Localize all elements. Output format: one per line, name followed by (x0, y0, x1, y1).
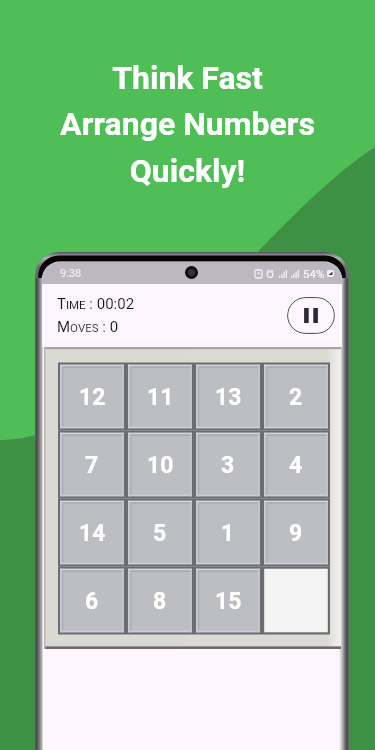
staticText: 12 (79, 384, 106, 411)
staticText: 7 (85, 452, 99, 479)
button[interactable]: 13 (194, 363, 262, 431)
staticText: 13 (215, 384, 242, 411)
staticText: 9 (289, 520, 303, 547)
staticText: 8 (153, 588, 167, 615)
staticText: 6 (85, 588, 99, 615)
staticText: Think Fast Arrange Numbers Quickly! (0, 59, 375, 190)
staticText: 11 (147, 384, 174, 411)
staticText: 54% (303, 267, 325, 280)
staticText: 3 (221, 452, 235, 479)
staticText: MOVES : 0 (57, 318, 119, 336)
button[interactable]: 12 (58, 363, 126, 431)
button[interactable]: 9 (262, 499, 330, 567)
button[interactable]: 10 (126, 431, 194, 499)
staticText: 14 (79, 520, 106, 547)
button[interactable]: 3 (194, 431, 262, 499)
staticText: 10 (147, 452, 174, 479)
button[interactable] (262, 567, 330, 635)
button[interactable]: 7 (58, 431, 126, 499)
staticText: 1 (221, 520, 235, 547)
button[interactable]: 11 (126, 363, 194, 431)
staticText: 9:38 (60, 267, 82, 280)
staticText: 5 (153, 520, 167, 547)
staticText: 2 (289, 384, 303, 411)
staticText: TIME : 00:02 (57, 295, 135, 313)
button[interactable]: 4 (262, 431, 330, 499)
staticText: 4 (289, 452, 303, 479)
button[interactable]: Pause (287, 297, 335, 334)
button[interactable]: 5 (126, 499, 194, 567)
button[interactable]: 6 (58, 567, 126, 635)
button[interactable]: 15 (194, 567, 262, 635)
button[interactable]: 8 (126, 567, 194, 635)
button[interactable]: 1 (194, 499, 262, 567)
button[interactable]: 14 (58, 499, 126, 567)
staticText: 15 (215, 588, 242, 615)
button[interactable]: 2 (262, 363, 330, 431)
